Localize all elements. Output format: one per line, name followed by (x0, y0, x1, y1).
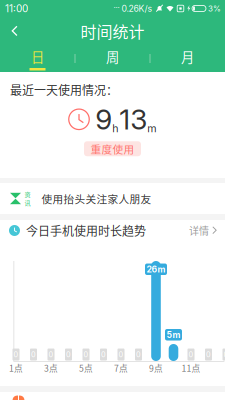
staticText: 详情 (189, 223, 209, 238)
staticText: 使用抬头关注家人朋友 (41, 191, 151, 206)
button[interactable]: Back (0, 17, 30, 45)
staticText: 5m (166, 329, 180, 340)
staticText: 0 (83, 350, 88, 359)
staticText: m (147, 122, 156, 135)
staticText: 日 (31, 47, 44, 66)
staticText: 9 (95, 102, 112, 136)
staticText: 0 (101, 350, 106, 359)
staticText: 9点 (149, 362, 163, 374)
button[interactable]: 日 (0, 45, 75, 72)
staticText: 7点 (114, 362, 128, 374)
staticText: 11点 (181, 362, 200, 374)
staticText: 0 (13, 350, 18, 359)
staticText: 0 (118, 350, 123, 359)
staticText: 最近一天使用情况： (10, 81, 118, 98)
button[interactable]: 资 (0, 183, 225, 214)
staticText: 0.26K/s (121, 3, 152, 14)
staticText: ··· (113, 2, 119, 12)
staticText: 3点 (44, 362, 58, 374)
staticText: 0 (223, 350, 225, 359)
staticText: 11:00 (5, 2, 28, 15)
staticText: 月 (181, 47, 194, 66)
staticText: 0 (31, 350, 36, 359)
staticText: 0 (66, 350, 71, 359)
staticText: 3% (208, 4, 221, 13)
staticText: h (112, 122, 118, 135)
staticText: 重度使用 (90, 141, 134, 156)
staticText: 0 (188, 350, 193, 359)
staticText: 13 (119, 102, 147, 136)
staticText: 周 (106, 47, 119, 66)
button[interactable]: 月 (150, 45, 225, 72)
button[interactable]: 今日手机使用时长趋势 (0, 220, 225, 241)
staticText: 资 (24, 190, 30, 198)
staticText: 0 (48, 350, 53, 359)
staticText: 26m (146, 264, 165, 274)
staticText: 5点 (79, 362, 93, 374)
button[interactable]: 周 (75, 45, 150, 72)
staticText: 今日手机使用时长趋势 (26, 222, 146, 239)
staticText: 0 (206, 350, 211, 359)
staticText: 0 (136, 350, 141, 359)
staticText: 讯 (24, 198, 30, 207)
staticText: 时间统计 (80, 19, 144, 43)
staticText: 1点 (9, 362, 23, 374)
